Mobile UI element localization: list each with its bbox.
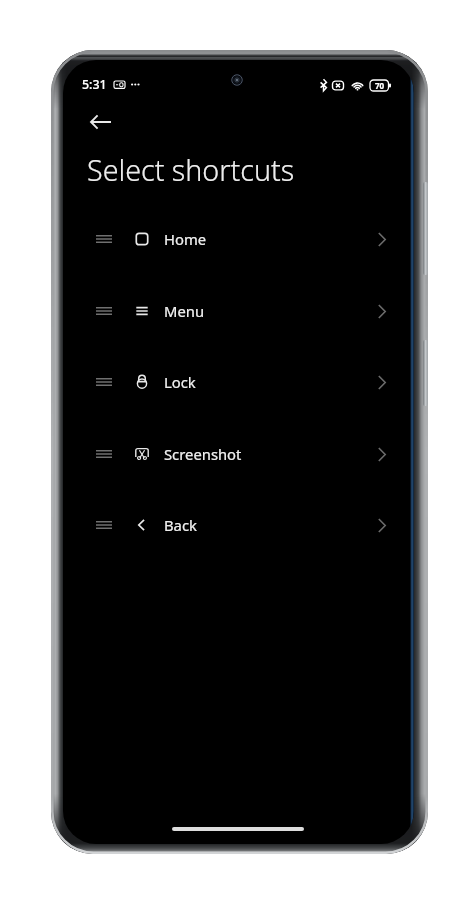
staticText: Home: [164, 229, 207, 249]
staticText: Menu: [164, 301, 205, 321]
other: Reorder Home: [96, 231, 112, 247]
staticText: Back: [164, 515, 197, 535]
staticText: Screenshot: [164, 444, 242, 464]
staticText: Select shortcuts: [87, 150, 295, 189]
staticText: 5:31: [82, 76, 107, 93]
button[interactable]: Navigate up: [77, 98, 125, 146]
other: Reorder Menu: [96, 303, 112, 319]
other: Reorder Screenshot: [96, 446, 112, 462]
staticText: Lock: [164, 372, 196, 392]
button[interactable]: Reorder Back: [63, 489, 414, 561]
other: Reorder Back: [96, 517, 112, 533]
staticText: 70: [375, 80, 385, 91]
button[interactable]: Reorder Screenshot: [63, 418, 414, 490]
button[interactable]: Reorder Home: [63, 203, 414, 275]
other: Reorder Lock: [96, 374, 112, 390]
button[interactable]: Reorder Lock: [63, 346, 414, 418]
button[interactable]: Reorder Menu: [63, 275, 414, 347]
